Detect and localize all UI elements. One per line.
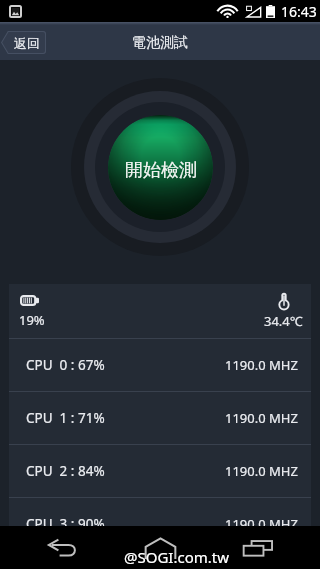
staticText: CPU 1 : 71% [26, 409, 105, 427]
staticText: 19% [19, 311, 45, 329]
staticText: 返回 [14, 35, 40, 51]
staticText: CPU 0 : 67% [26, 356, 105, 374]
button[interactable]: 返回 [1, 31, 46, 54]
button[interactable]: 開始檢測 [108, 115, 213, 220]
button[interactable]: CPU 3 : 90% [26, 498, 298, 550]
button[interactable]: CPU 0 : 67% [26, 339, 298, 391]
button[interactable]: Home [130, 526, 190, 569]
button[interactable]: CPU 2 : 84% [26, 445, 298, 497]
button[interactable]: CPU 1 : 71% [26, 392, 298, 444]
staticText: 34.4℃ [264, 312, 303, 330]
staticText: CPU 3 : 90% [26, 515, 105, 533]
staticText: 1190.0 MHZ [225, 409, 298, 427]
staticText: 1190.0 MHZ [225, 356, 298, 374]
button[interactable]: Recent apps [229, 526, 289, 569]
button[interactable]: Back [32, 526, 92, 569]
staticText: CPU 2 : 84% [26, 462, 105, 480]
staticText: 16:43 [281, 2, 317, 21]
staticText: 1190.0 MHZ [225, 515, 298, 533]
staticText: @SOGI.com.tw [124, 547, 229, 567]
staticText: 1190.0 MHZ [225, 462, 298, 480]
staticText: 開始檢測 [125, 159, 197, 182]
staticText: 電池測試 [132, 34, 188, 52]
